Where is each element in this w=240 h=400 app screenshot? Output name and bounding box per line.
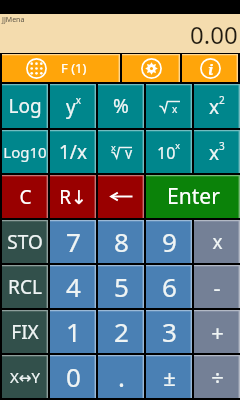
button[interactable]: 8 bbox=[98, 220, 144, 263]
button[interactable]: Info bbox=[182, 54, 238, 82]
other: Backspace bbox=[110, 190, 133, 203]
button[interactable]: FIX bbox=[2, 310, 48, 353]
button[interactable]: Log bbox=[2, 84, 48, 128]
staticText: 4 bbox=[66, 269, 81, 304]
button[interactable]: 0 bbox=[50, 355, 96, 398]
button[interactable]: ± bbox=[146, 355, 192, 398]
staticText: RCL bbox=[8, 274, 42, 300]
button[interactable]: C bbox=[2, 175, 48, 218]
staticText: 1/x bbox=[59, 139, 87, 165]
button[interactable]: . bbox=[98, 355, 144, 398]
button[interactable]: x2 bbox=[194, 84, 240, 128]
staticText: x bbox=[172, 102, 178, 116]
button[interactable]: RCL bbox=[2, 265, 48, 308]
staticText: yx bbox=[66, 93, 81, 119]
staticText: 6 bbox=[162, 269, 177, 304]
staticText: + bbox=[211, 317, 224, 347]
button[interactable]: x3 bbox=[194, 130, 240, 173]
staticText: y bbox=[125, 143, 133, 159]
staticText: x bbox=[212, 229, 223, 255]
staticText: ÷ bbox=[211, 362, 224, 392]
button[interactable]: Log10 bbox=[2, 130, 48, 173]
staticText: STO bbox=[7, 229, 43, 255]
staticText: FIX bbox=[11, 319, 39, 345]
staticText: 5 bbox=[114, 269, 129, 304]
button[interactable]: - bbox=[194, 265, 240, 308]
staticText: 0 bbox=[66, 359, 81, 394]
staticText: 8 bbox=[114, 224, 129, 259]
button[interactable]: R↓ bbox=[50, 175, 96, 218]
staticText: X↔Y bbox=[10, 367, 40, 387]
staticText: Log10 bbox=[3, 142, 47, 162]
staticText: 9 bbox=[162, 224, 177, 259]
button[interactable]: x bbox=[194, 220, 240, 263]
button[interactable]: 1/x bbox=[50, 130, 96, 173]
staticText: 1 bbox=[66, 314, 81, 349]
button[interactable]: % bbox=[98, 84, 144, 128]
button[interactable]: Backspace bbox=[98, 175, 144, 218]
staticText: 7 bbox=[66, 224, 81, 259]
button[interactable]: 7 bbox=[50, 220, 96, 263]
button[interactable]: Enter bbox=[146, 175, 240, 218]
button[interactable]: 4 bbox=[50, 265, 96, 308]
staticText: i bbox=[208, 59, 214, 79]
staticText: x3 bbox=[209, 139, 225, 165]
staticText: . bbox=[118, 359, 125, 394]
staticText: - bbox=[213, 272, 221, 302]
staticText: JJMena bbox=[2, 15, 25, 25]
button[interactable]: + bbox=[194, 310, 240, 353]
staticText: Log bbox=[8, 93, 42, 119]
button[interactable]: 2 bbox=[98, 310, 144, 353]
button[interactable]: 6 bbox=[146, 265, 192, 308]
button[interactable]: X↔Y bbox=[2, 355, 48, 398]
button[interactable]: ÷ bbox=[194, 355, 240, 398]
staticText: 0.00 bbox=[190, 18, 238, 51]
button[interactable]: Settings bbox=[122, 54, 180, 82]
staticText: F (1) bbox=[61, 59, 87, 77]
staticText: C bbox=[19, 184, 32, 210]
staticText: ± bbox=[163, 362, 176, 392]
staticText: x2 bbox=[209, 93, 225, 119]
staticText: Enter bbox=[167, 182, 220, 211]
button[interactable]: x bbox=[98, 130, 144, 173]
staticText: x bbox=[111, 141, 116, 153]
staticText: 3 bbox=[162, 314, 177, 349]
staticText: 2 bbox=[114, 314, 129, 349]
button[interactable]: STO bbox=[2, 220, 48, 263]
button[interactable]: 1 bbox=[50, 310, 96, 353]
button[interactable]: 9 bbox=[146, 220, 192, 263]
staticText: 10x bbox=[157, 139, 181, 164]
staticText: % bbox=[113, 93, 129, 119]
button[interactable]: F (1) bbox=[2, 54, 120, 82]
button[interactable]: 5 bbox=[98, 265, 144, 308]
button[interactable]: 10x bbox=[146, 130, 192, 173]
staticText: R↓ bbox=[59, 184, 87, 210]
button[interactable]: 3 bbox=[146, 310, 192, 353]
button[interactable]: x bbox=[146, 84, 192, 128]
button[interactable]: yx bbox=[50, 84, 96, 128]
